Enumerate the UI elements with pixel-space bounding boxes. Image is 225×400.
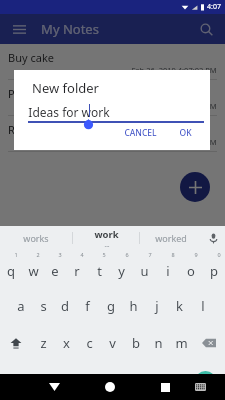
staticText: f <box>85 297 90 315</box>
staticText: works <box>23 232 49 244</box>
staticText: u <box>140 262 149 280</box>
staticText: 1 <box>14 251 18 258</box>
button[interactable]: c <box>78 324 101 362</box>
button[interactable]: , <box>40 362 60 400</box>
button[interactable]: Buy cake <box>0 44 225 80</box>
staticText: Ideas for work <box>28 104 110 120</box>
button[interactable]: 7 <box>133 250 156 287</box>
staticText: Pay bills <box>8 86 50 101</box>
button[interactable]: 2 <box>22 250 44 287</box>
staticText: k <box>176 297 183 315</box>
staticText: OK <box>179 127 192 139</box>
staticText: My Notes <box>41 20 99 38</box>
staticText: 6 <box>125 251 129 258</box>
staticText: w <box>28 262 39 280</box>
staticText: o <box>187 262 195 280</box>
button[interactable]: Search <box>195 18 217 40</box>
button[interactable]: Pay bills <box>0 80 225 116</box>
staticText: 8 <box>171 251 175 258</box>
button[interactable]: k <box>168 287 191 324</box>
button[interactable]: Back <box>37 374 71 400</box>
staticText: l <box>201 297 205 315</box>
staticText: v <box>109 334 116 352</box>
button[interactable]: 1 <box>0 250 22 287</box>
button[interactable]: Enter <box>195 371 216 392</box>
staticText: New folder <box>32 79 99 97</box>
staticText: 7 <box>148 251 152 258</box>
button[interactable]: 9 <box>179 250 202 287</box>
button[interactable]: d <box>54 287 76 324</box>
button[interactable]: z <box>32 324 55 362</box>
staticText: x <box>63 334 70 352</box>
button[interactable]: worked <box>140 226 202 250</box>
staticText: CANCEL <box>124 127 157 139</box>
button[interactable]: ?123 <box>0 362 40 400</box>
button[interactable]: g <box>99 287 122 324</box>
staticText: 0 <box>217 251 221 258</box>
staticText: Buy cake <box>8 50 54 65</box>
button[interactable]: Read book <box>0 116 225 152</box>
staticText: Feb 26, 2019 4:05:12 PM <box>131 137 217 147</box>
staticText: r <box>74 262 80 280</box>
button[interactable]: Recent apps <box>148 374 183 400</box>
button[interactable]: h <box>122 287 145 324</box>
button[interactable]: Open navigation menu <box>8 18 30 40</box>
staticText: , <box>49 374 52 388</box>
button[interactable]: a <box>10 287 32 324</box>
button[interactable]: v <box>101 324 124 362</box>
staticText: p <box>210 262 218 280</box>
staticText: h <box>129 297 138 315</box>
button[interactable]: work <box>73 226 139 250</box>
staticText: j <box>155 297 159 315</box>
staticText: m <box>175 334 188 352</box>
staticText: 4 <box>80 251 84 258</box>
staticText: z <box>40 334 47 352</box>
staticText: q <box>7 262 15 280</box>
staticText: i <box>166 262 170 280</box>
button[interactable]: Space <box>60 362 165 400</box>
button[interactable]: l <box>191 287 214 324</box>
button[interactable]: 5 <box>88 250 110 287</box>
button[interactable]: Home <box>92 374 127 400</box>
button[interactable]: CANCEL <box>118 124 163 142</box>
staticText: Feb 26, 2019 4:07:02 PM <box>131 65 217 75</box>
staticText: 2 <box>36 251 40 258</box>
staticText: a <box>17 297 25 315</box>
staticText: 9 <box>194 251 198 258</box>
staticText: Read book <box>8 122 63 137</box>
button[interactable]: 6 <box>110 250 133 287</box>
button[interactable]: n <box>147 324 170 362</box>
staticText: 4:07 <box>207 2 221 12</box>
button[interactable]: m <box>170 324 193 362</box>
button[interactable]: Add note <box>180 172 210 202</box>
button[interactable]: b <box>124 324 147 362</box>
button[interactable]: Switch keyboard <box>183 374 218 400</box>
staticText: Feb 26, 2019 4:06:40 PM <box>131 101 217 111</box>
staticText: d <box>61 297 69 315</box>
button[interactable]: Delete <box>193 324 225 362</box>
staticText: 5 <box>102 251 106 258</box>
button[interactable]: f <box>76 287 99 324</box>
button[interactable]: 4 <box>66 250 88 287</box>
staticText: ... <box>104 241 110 249</box>
button[interactable]: 8 <box>156 250 179 287</box>
button[interactable]: Shift <box>0 324 32 362</box>
button[interactable]: OK <box>173 124 198 142</box>
staticText: y <box>118 262 125 280</box>
staticText: c <box>86 334 93 352</box>
button[interactable]: j <box>145 287 168 324</box>
staticText: b <box>132 334 140 352</box>
button[interactable]: x <box>55 324 78 362</box>
staticText: n <box>154 334 163 352</box>
button[interactable]: 3 <box>44 250 66 287</box>
button[interactable]: . <box>165 362 185 400</box>
button[interactable]: Voice input <box>202 226 225 250</box>
button[interactable]: s <box>32 287 54 324</box>
staticText: t <box>97 262 102 280</box>
staticText: 3 <box>58 251 62 258</box>
button[interactable]: works <box>0 226 72 250</box>
staticText: g <box>107 297 115 315</box>
button[interactable]: 0 <box>202 250 225 287</box>
